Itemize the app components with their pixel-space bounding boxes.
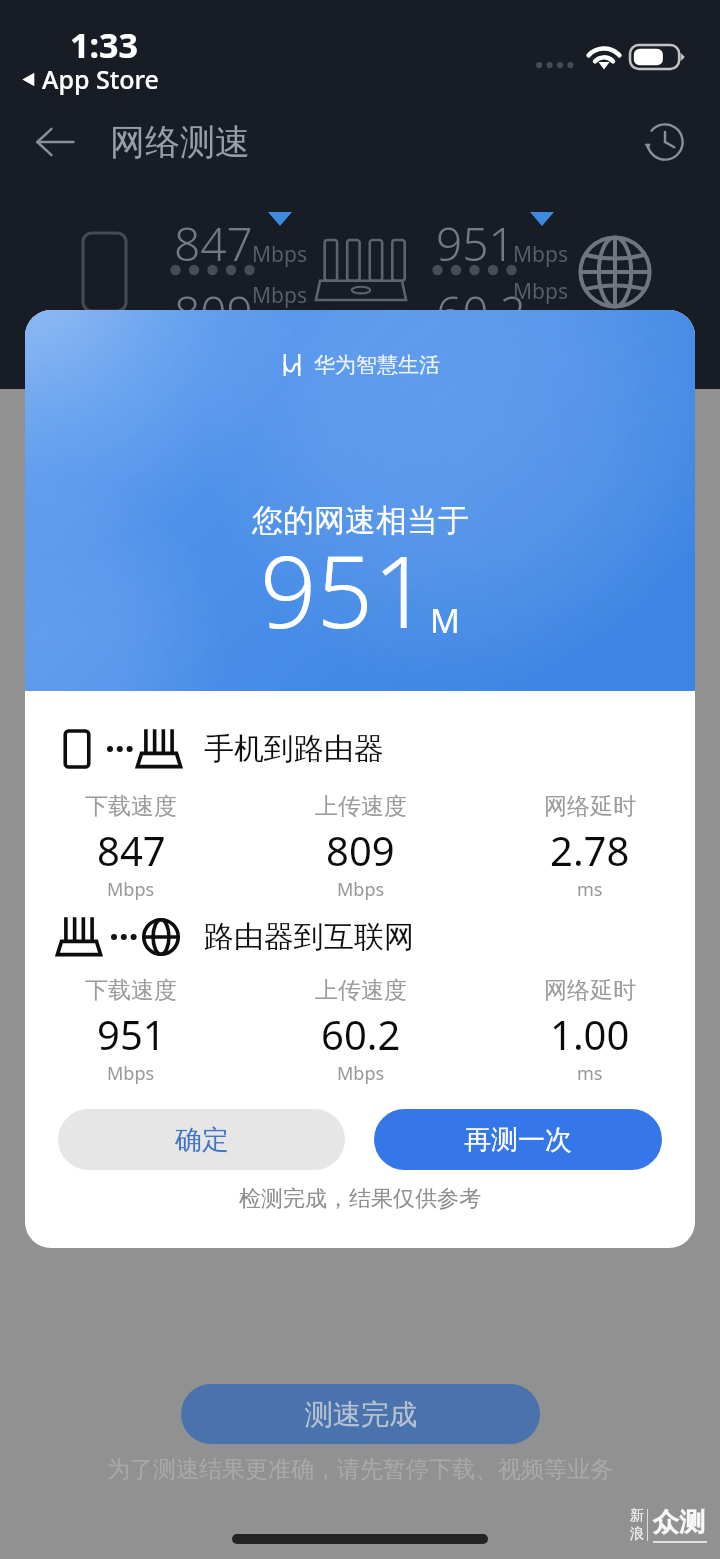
button[interactable]: 测速完成 — [181, 1384, 540, 1444]
staticText: 1:33 — [70, 22, 138, 68]
staticText: Mbps — [513, 277, 568, 306]
staticText: 浪 — [630, 1525, 644, 1543]
staticText: 847 — [97, 823, 166, 877]
staticText: 华为智慧生活 — [314, 352, 440, 378]
staticText: Mbps — [107, 877, 155, 902]
staticText: 951 — [260, 522, 430, 657]
button[interactable]: 确定 — [58, 1109, 345, 1170]
staticText: ms — [577, 877, 603, 902]
staticText: 为了测速结果更准确，请先暂停下载、视频等业务 — [107, 1455, 613, 1484]
staticText: M — [430, 598, 460, 643]
staticText: 新 — [630, 1507, 644, 1525]
staticText: 2.78 — [550, 823, 630, 877]
staticText: 路由器到互联网 — [204, 918, 414, 956]
staticText: 网络延时 — [544, 792, 636, 821]
staticText: Mbps — [252, 281, 307, 310]
staticText: 847 — [174, 212, 253, 275]
staticText: 下载速度 — [85, 792, 177, 821]
staticText: 测速完成 — [305, 1397, 417, 1432]
staticText: App Store — [42, 62, 159, 96]
button[interactable]: 再测一次 — [374, 1109, 662, 1170]
staticText: 众测 — [653, 1506, 705, 1539]
staticText: 手机到路由器 — [204, 730, 384, 768]
staticText: 809 — [326, 823, 395, 877]
staticText: Mbps — [107, 1061, 155, 1086]
staticText: 检测完成，结果仅供参考 — [239, 1185, 481, 1213]
staticText: 网络延时 — [544, 976, 636, 1005]
staticText: 再测一次 — [464, 1123, 572, 1157]
staticText: 您的网速相当于 — [252, 501, 469, 540]
staticText: 网络测速 — [110, 120, 250, 164]
staticText: 60.2 — [436, 281, 527, 344]
staticText: Mbps — [337, 1061, 385, 1086]
staticText: 809 — [174, 281, 253, 344]
staticText: Mbps — [337, 877, 385, 902]
staticText: 951 — [436, 212, 515, 275]
staticText: 下载速度 — [85, 976, 177, 1005]
button[interactable]: History — [636, 113, 694, 171]
button[interactable]: Back — [26, 113, 84, 171]
staticText: 60.2 — [321, 1007, 401, 1061]
staticText: Mbps — [252, 240, 307, 269]
staticText: 上传速度 — [315, 792, 407, 821]
staticText: 上传速度 — [315, 976, 407, 1005]
staticText: ms — [577, 1061, 603, 1086]
staticText: 951 — [97, 1007, 166, 1061]
staticText: Mbps — [513, 240, 568, 269]
staticText: 1.00 — [550, 1007, 630, 1061]
staticText: 确定 — [175, 1123, 229, 1157]
